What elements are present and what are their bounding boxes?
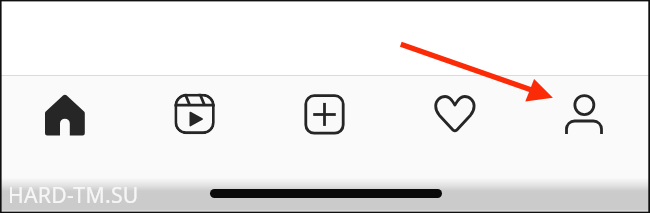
staticText: HARD-TM.SU [8, 180, 139, 209]
button[interactable]: Home [0, 76, 130, 154]
button[interactable]: Reels [130, 76, 260, 154]
button[interactable]: Create [260, 76, 390, 154]
button[interactable]: Profile [520, 76, 650, 154]
button[interactable]: Activity [390, 76, 520, 154]
